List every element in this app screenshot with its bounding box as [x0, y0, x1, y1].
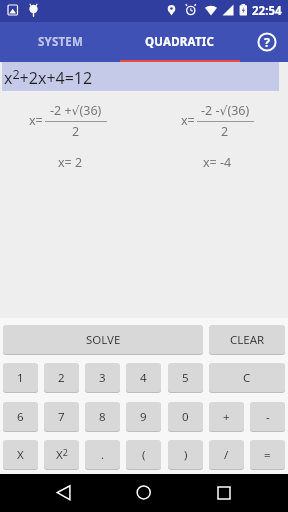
- staticText: X2: [56, 446, 68, 463]
- staticText: 1: [17, 370, 24, 386]
- staticText: 22:54: [252, 3, 282, 19]
- button[interactable]: (: [126, 440, 161, 469]
- button[interactable]: /: [209, 440, 244, 469]
- button[interactable]: 7: [44, 402, 79, 431]
- staticText: CLEAR: [230, 332, 265, 348]
- staticText: 5: [182, 370, 189, 386]
- staticText: 3: [99, 370, 106, 386]
- staticText: /: [224, 447, 229, 463]
- button[interactable]: -: [250, 402, 285, 431]
- staticText: SOLVE: [86, 332, 121, 348]
- button[interactable]: SYSTEM: [0, 22, 120, 62]
- staticText: -: [266, 409, 270, 425]
- staticText: 7: [58, 409, 65, 425]
- button[interactable]: +: [209, 402, 244, 431]
- button[interactable]: 0: [168, 402, 203, 431]
- staticText: x2+2x+4=12: [4, 66, 93, 89]
- button[interactable]: 8: [85, 402, 120, 431]
- staticText: x= 2: [58, 154, 83, 170]
- button[interactable]: 6: [3, 402, 38, 431]
- button[interactable]: =: [250, 440, 285, 469]
- staticText: 4: [140, 370, 147, 386]
- staticText: ): [184, 447, 188, 463]
- staticText: 2: [72, 123, 80, 139]
- staticText: 2: [221, 123, 229, 139]
- staticText: (: [142, 447, 146, 463]
- staticText: X: [17, 447, 24, 463]
- button[interactable]: ): [168, 440, 203, 469]
- staticText: 2: [58, 370, 65, 386]
- button[interactable]: ?: [240, 22, 288, 62]
- staticText: 8: [99, 409, 106, 425]
- button[interactable]: 9: [126, 402, 161, 431]
- button[interactable]: 5: [168, 363, 203, 392]
- staticText: C: [243, 370, 251, 386]
- button[interactable]: C: [209, 363, 285, 392]
- staticText: ?: [264, 34, 270, 51]
- staticText: 0: [182, 409, 189, 425]
- staticText: QUADRATIC: [145, 34, 215, 50]
- button[interactable]: 1: [3, 363, 38, 392]
- staticText: =: [264, 447, 271, 463]
- staticText: x=: [29, 112, 43, 128]
- staticText: x= -4: [203, 154, 232, 170]
- staticText: -2 +√(36): [50, 102, 102, 118]
- staticText: 9: [140, 409, 147, 425]
- staticText: .: [101, 447, 105, 463]
- button[interactable]: x2+2x+4=12: [2, 62, 279, 91]
- button[interactable]: [40, 476, 84, 510]
- button[interactable]: 2: [44, 363, 79, 392]
- button[interactable]: SOLVE: [3, 325, 203, 354]
- button[interactable]: 3: [85, 363, 120, 392]
- button[interactable]: X: [3, 440, 38, 469]
- button[interactable]: [122, 476, 166, 510]
- button[interactable]: 4: [126, 363, 161, 392]
- staticText: -2 -√(36): [201, 102, 250, 118]
- button[interactable]: [202, 476, 246, 510]
- staticText: SYSTEM: [38, 34, 83, 50]
- staticText: +: [223, 409, 230, 425]
- staticText: x=: [181, 112, 195, 128]
- button[interactable]: .: [85, 440, 120, 469]
- button[interactable]: X2: [44, 440, 79, 469]
- staticText: 6: [17, 409, 24, 425]
- button[interactable]: QUADRATIC: [120, 22, 240, 62]
- button[interactable]: CLEAR: [209, 325, 285, 354]
